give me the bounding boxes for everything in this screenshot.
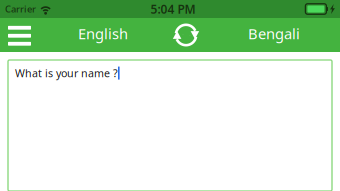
staticText: 5:04 PM — [150, 1, 195, 17]
button[interactable]: What is your name ? — [0, 52, 340, 191]
staticText: Bengali — [248, 24, 300, 43]
staticText: What is your name ? — [15, 66, 118, 80]
button[interactable]: Swap languages — [158, 18, 214, 52]
staticText: Carrier — [5, 3, 36, 15]
button[interactable]: English — [48, 18, 158, 52]
staticText: English — [78, 24, 128, 43]
button[interactable]: Menu — [0, 18, 48, 52]
button[interactable]: Bengali — [214, 18, 334, 52]
